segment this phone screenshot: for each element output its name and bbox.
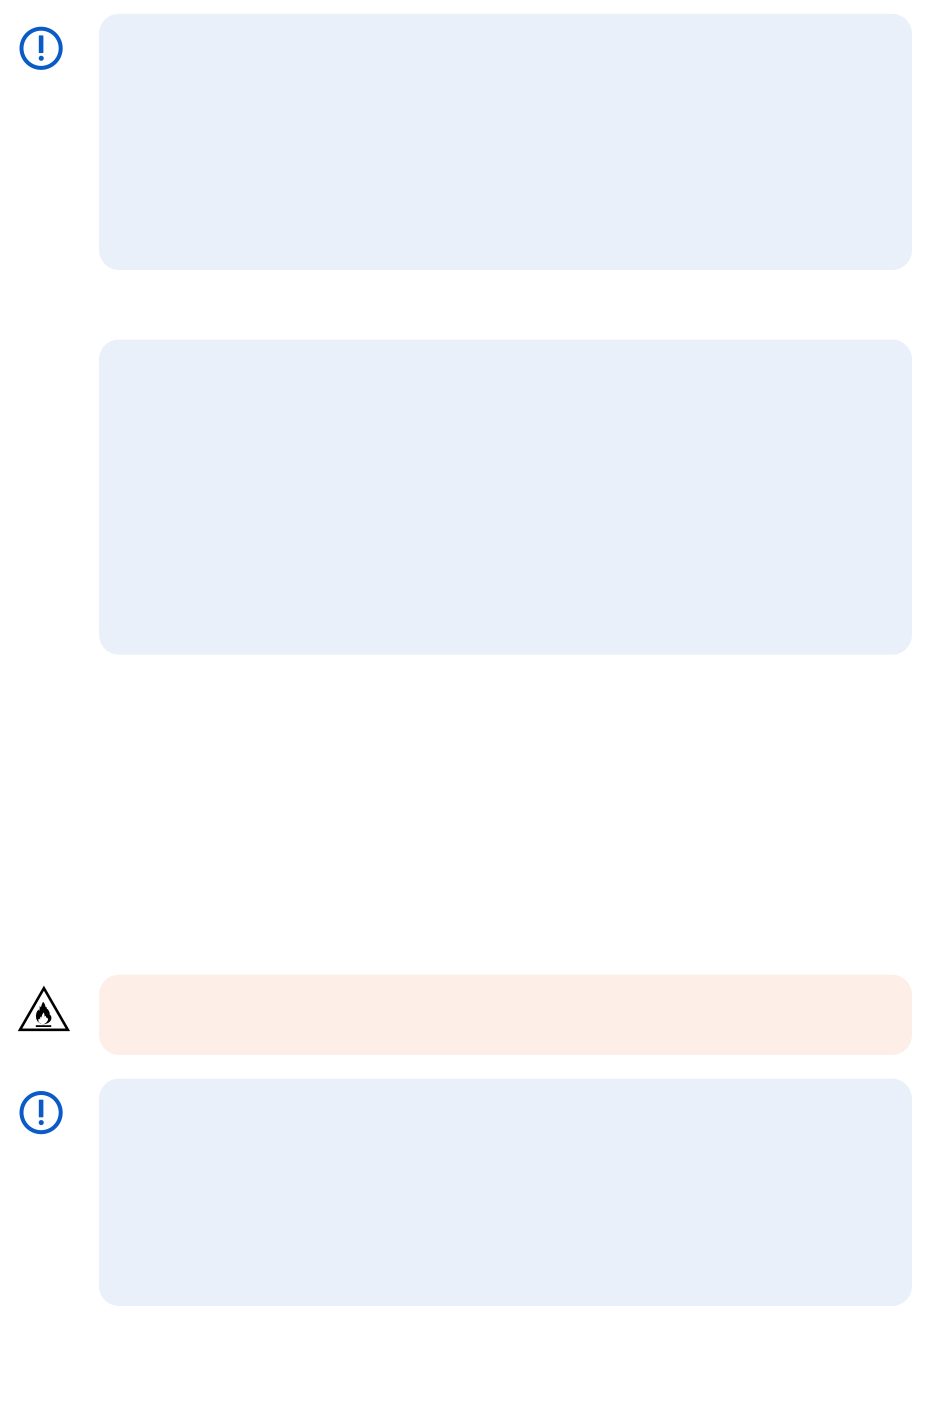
button[interactable]: Important [19, 1091, 63, 1134]
button[interactable]: Important [19, 27, 63, 70]
button[interactable]: Warning [19, 987, 69, 1031]
